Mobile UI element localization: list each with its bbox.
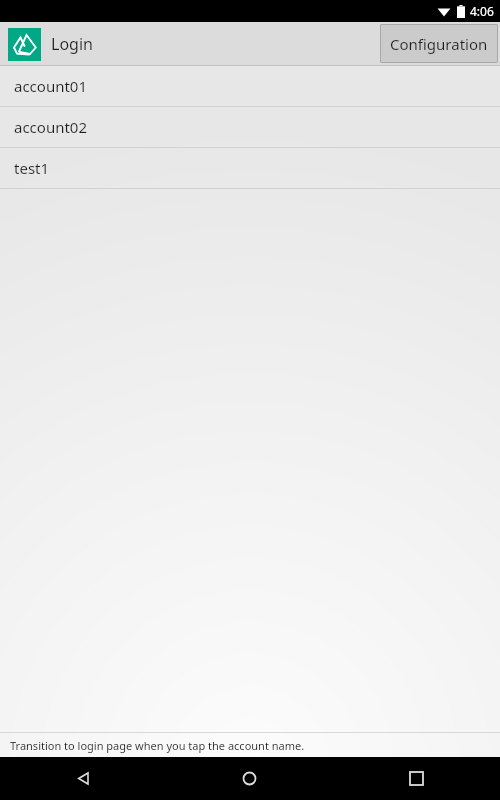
- button[interactable]: Configuration: [380, 24, 498, 63]
- staticText: Configuration: [390, 34, 488, 54]
- button[interactable]: Home: [166, 757, 333, 800]
- button[interactable]: Recent apps: [333, 757, 500, 800]
- button[interactable]: Back: [0, 757, 166, 800]
- button[interactable]: test1: [0, 148, 500, 188]
- staticText: Login: [51, 33, 93, 55]
- staticText: Transition to login page when you tap th…: [10, 738, 305, 753]
- staticText: test1: [14, 158, 50, 178]
- staticText: account02: [14, 117, 88, 137]
- button[interactable]: account02: [0, 107, 500, 147]
- button[interactable]: account01: [0, 66, 500, 106]
- staticText: account01: [14, 76, 88, 96]
- staticText: 4:06: [470, 3, 494, 19]
- other: App icon: [8, 28, 41, 61]
